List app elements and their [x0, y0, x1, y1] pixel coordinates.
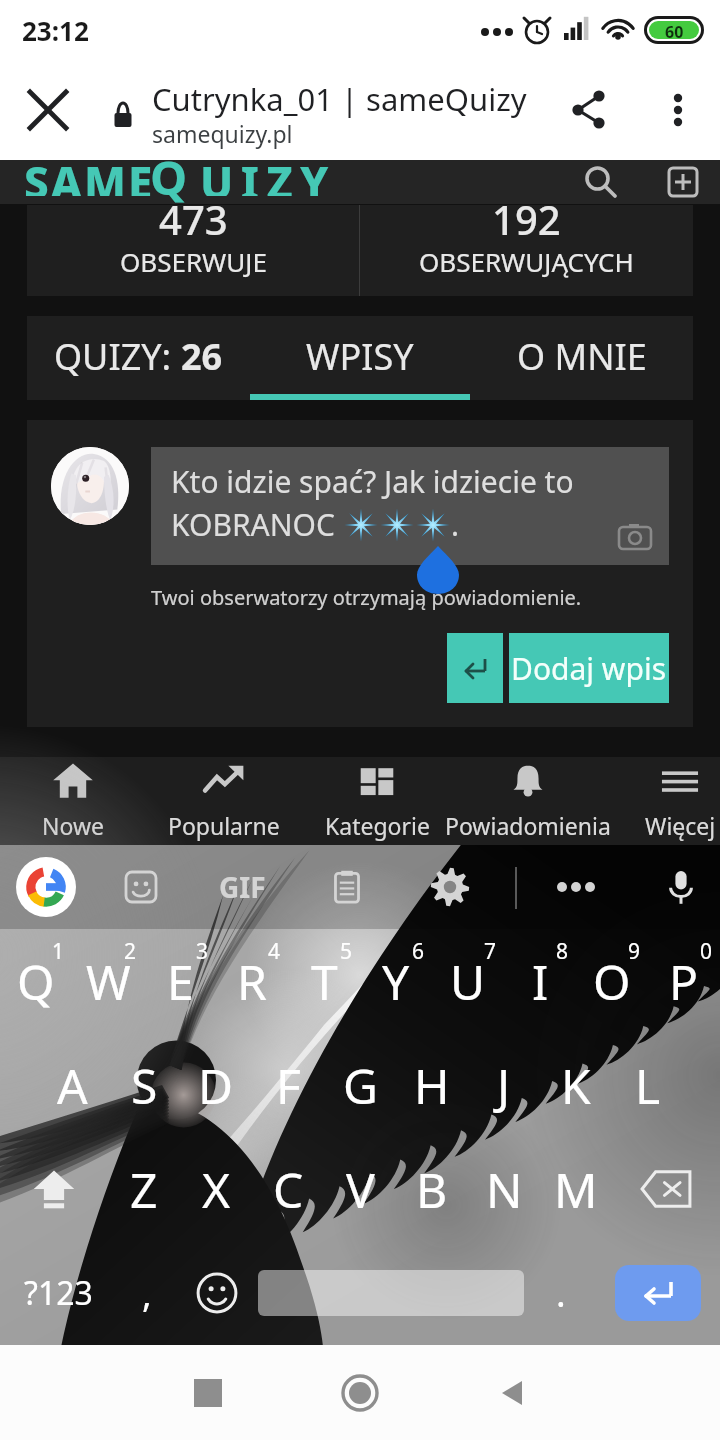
button[interactable]: T: [288, 929, 360, 1033]
staticText: Cutrynka_01 | sameQuizy: [152, 78, 527, 120]
button[interactable]: Add: [646, 160, 720, 204]
button[interactable]: M: [540, 1137, 612, 1241]
button[interactable]: Recents: [153, 1345, 263, 1440]
button[interactable]: Popularne: [148, 757, 300, 845]
button[interactable]: W: [72, 929, 144, 1033]
button[interactable]: Close: [8, 60, 88, 160]
button[interactable]: B: [396, 1137, 468, 1241]
staticText: SAME: [24, 152, 155, 196]
button[interactable]: J: [468, 1033, 540, 1137]
button[interactable]: G: [324, 1033, 396, 1137]
button[interactable]: More: [540, 845, 612, 929]
button[interactable]: ?123: [0, 1241, 116, 1345]
button[interactable]: P: [648, 929, 720, 1033]
button[interactable]: V: [324, 1137, 396, 1241]
staticText: Kategorie: [325, 810, 430, 841]
button[interactable]: SAME: [0, 160, 400, 204]
staticText: 4: [268, 937, 281, 966]
button[interactable]: 192: [360, 205, 693, 296]
staticText: 26: [181, 332, 223, 381]
staticText: Dodaj wpis: [511, 648, 667, 689]
button[interactable]: O: [576, 929, 648, 1033]
button[interactable]: O MNIE: [471, 316, 693, 400]
button[interactable]: Shift: [0, 1137, 108, 1241]
button[interactable]: A: [36, 1033, 108, 1137]
staticText: 60: [665, 21, 684, 39]
button[interactable]: X: [180, 1137, 252, 1241]
button[interactable]: Clipboard: [311, 845, 383, 929]
staticText: 1: [52, 937, 65, 966]
button[interactable]: Nowe: [0, 757, 149, 845]
button[interactable]: Voice input: [645, 845, 717, 929]
button[interactable]: U: [432, 929, 504, 1033]
staticText: Z: [130, 1157, 158, 1222]
button[interactable]: Stickers: [105, 845, 177, 929]
button[interactable]: Q: [0, 929, 72, 1033]
button[interactable]: Y: [360, 929, 432, 1033]
button[interactable]: Add photo: [613, 515, 657, 559]
staticText: E: [167, 949, 194, 1014]
button[interactable]: Z: [108, 1137, 180, 1241]
staticText: .: [451, 504, 460, 545]
button[interactable]: Home: [305, 1345, 415, 1440]
staticText: D: [198, 1053, 234, 1118]
button[interactable]: ,: [116, 1241, 178, 1345]
button[interactable]: WPISY: [249, 316, 471, 400]
button[interactable]: R: [216, 929, 288, 1033]
staticText: N: [486, 1157, 523, 1222]
button[interactable]: I: [504, 929, 576, 1033]
button[interactable]: H: [396, 1033, 468, 1137]
button[interactable]: K: [540, 1033, 612, 1137]
button[interactable]: Enter: [447, 633, 503, 703]
staticText: ?123: [24, 1271, 93, 1315]
button[interactable]: More options: [636, 60, 720, 160]
staticText: K: [561, 1053, 591, 1118]
button[interactable]: Backspace: [612, 1137, 720, 1241]
staticText: U: [450, 949, 486, 1014]
button[interactable]: L: [612, 1033, 684, 1137]
button[interactable]: 473: [27, 205, 359, 296]
button[interactable]: Google: [10, 845, 82, 929]
staticText: M: [554, 1157, 598, 1222]
button[interactable]: .: [526, 1241, 596, 1345]
button[interactable]: Więcej: [604, 757, 720, 845]
staticText: 473: [159, 192, 228, 246]
staticText: Q: [150, 145, 188, 209]
staticText: 6: [412, 937, 425, 966]
button[interactable]: QUIZY:: [27, 316, 249, 400]
button[interactable]: Powiadomienia: [428, 757, 628, 845]
button[interactable]: F: [252, 1033, 324, 1137]
staticText: T: [311, 949, 338, 1014]
button[interactable]: Settings: [414, 845, 486, 929]
staticText: Y: [382, 949, 410, 1014]
staticText: S: [131, 1053, 158, 1118]
staticText: O MNIE: [517, 332, 647, 381]
button[interactable]: C: [252, 1137, 324, 1241]
button[interactable]: S: [108, 1033, 180, 1137]
staticText: X: [202, 1157, 231, 1222]
button[interactable]: Space: [255, 1241, 526, 1345]
staticText: J: [497, 1053, 511, 1118]
button[interactable]: E: [144, 929, 216, 1033]
button[interactable]: Search: [556, 160, 646, 204]
button[interactable]: Back: [457, 1345, 567, 1440]
button[interactable]: Kategorie: [301, 757, 453, 845]
staticText: W: [86, 949, 131, 1014]
button[interactable]: Kto idzie spać? Jak idziecie to: [151, 447, 669, 565]
staticText: Popularne: [168, 810, 280, 841]
button[interactable]: N: [468, 1137, 540, 1241]
staticText: Więcej: [645, 810, 716, 841]
button[interactable]: D: [180, 1033, 252, 1137]
button[interactable]: Dodaj wpis: [509, 633, 669, 703]
staticText: OBSERWUJĄCYCH: [419, 244, 634, 279]
button[interactable]: Share: [544, 60, 636, 160]
button[interactable]: Enter: [596, 1241, 720, 1345]
button[interactable]: Avatar: [51, 447, 129, 525]
staticText: ,: [142, 1269, 152, 1318]
staticText: B: [416, 1157, 448, 1222]
staticText: QUIZY:: [54, 332, 181, 381]
staticText: O: [593, 949, 631, 1014]
button[interactable]: GIF: [206, 845, 278, 929]
button[interactable]: Emoji: [178, 1241, 255, 1345]
staticText: 7: [484, 937, 497, 966]
